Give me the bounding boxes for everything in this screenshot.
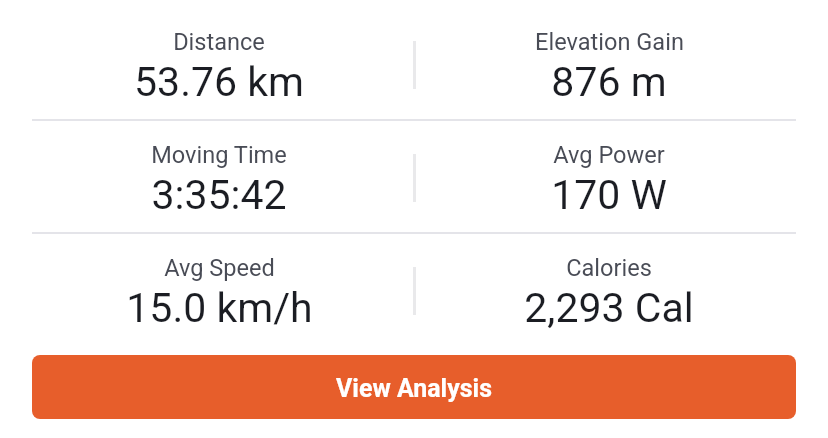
staticText: 876 m xyxy=(551,58,667,106)
staticText: Elevation Gain xyxy=(535,28,684,56)
staticText: 170 W xyxy=(551,171,667,219)
button[interactable]: View Analysis xyxy=(32,355,796,419)
staticText: 2,293 Cal xyxy=(524,284,694,332)
staticText: Distance xyxy=(173,28,265,56)
staticText: 15.0 km/h xyxy=(126,284,313,332)
staticText: Avg Speed xyxy=(164,254,275,282)
staticText: 3:35:42 xyxy=(151,171,287,219)
staticText: View Analysis xyxy=(336,374,492,403)
staticText: Calories xyxy=(566,254,652,282)
staticText: Avg Power xyxy=(553,141,665,169)
staticText: 53.76 km xyxy=(134,58,304,106)
staticText: Moving Time xyxy=(151,141,287,169)
